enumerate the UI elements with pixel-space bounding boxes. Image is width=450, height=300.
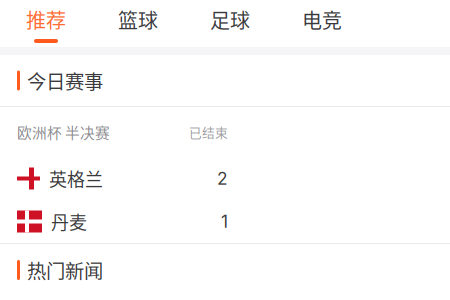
staticText: 电竞 (302, 5, 342, 34)
button[interactable]: 电竞 (276, 0, 368, 47)
staticText: 2 (217, 168, 228, 189)
staticText: 篮球 (118, 5, 158, 34)
staticText: 英格兰 (49, 165, 103, 192)
staticText: 推荐 (26, 5, 66, 34)
staticText: 热门新闻 (27, 256, 103, 284)
staticText: 足球 (210, 5, 250, 34)
button[interactable]: 足球 (184, 0, 276, 47)
button[interactable]: 篮球 (92, 0, 184, 47)
staticText: 丹麦 (51, 208, 87, 235)
staticText: 欧洲杯 半决赛 (17, 121, 110, 143)
staticText: 今日赛事 (27, 66, 103, 94)
staticText: 1 (221, 211, 228, 232)
button[interactable]: 推荐 (0, 0, 92, 47)
button[interactable]: 欧洲杯 半决赛 (0, 107, 450, 243)
staticText: 已结束 (189, 123, 228, 141)
